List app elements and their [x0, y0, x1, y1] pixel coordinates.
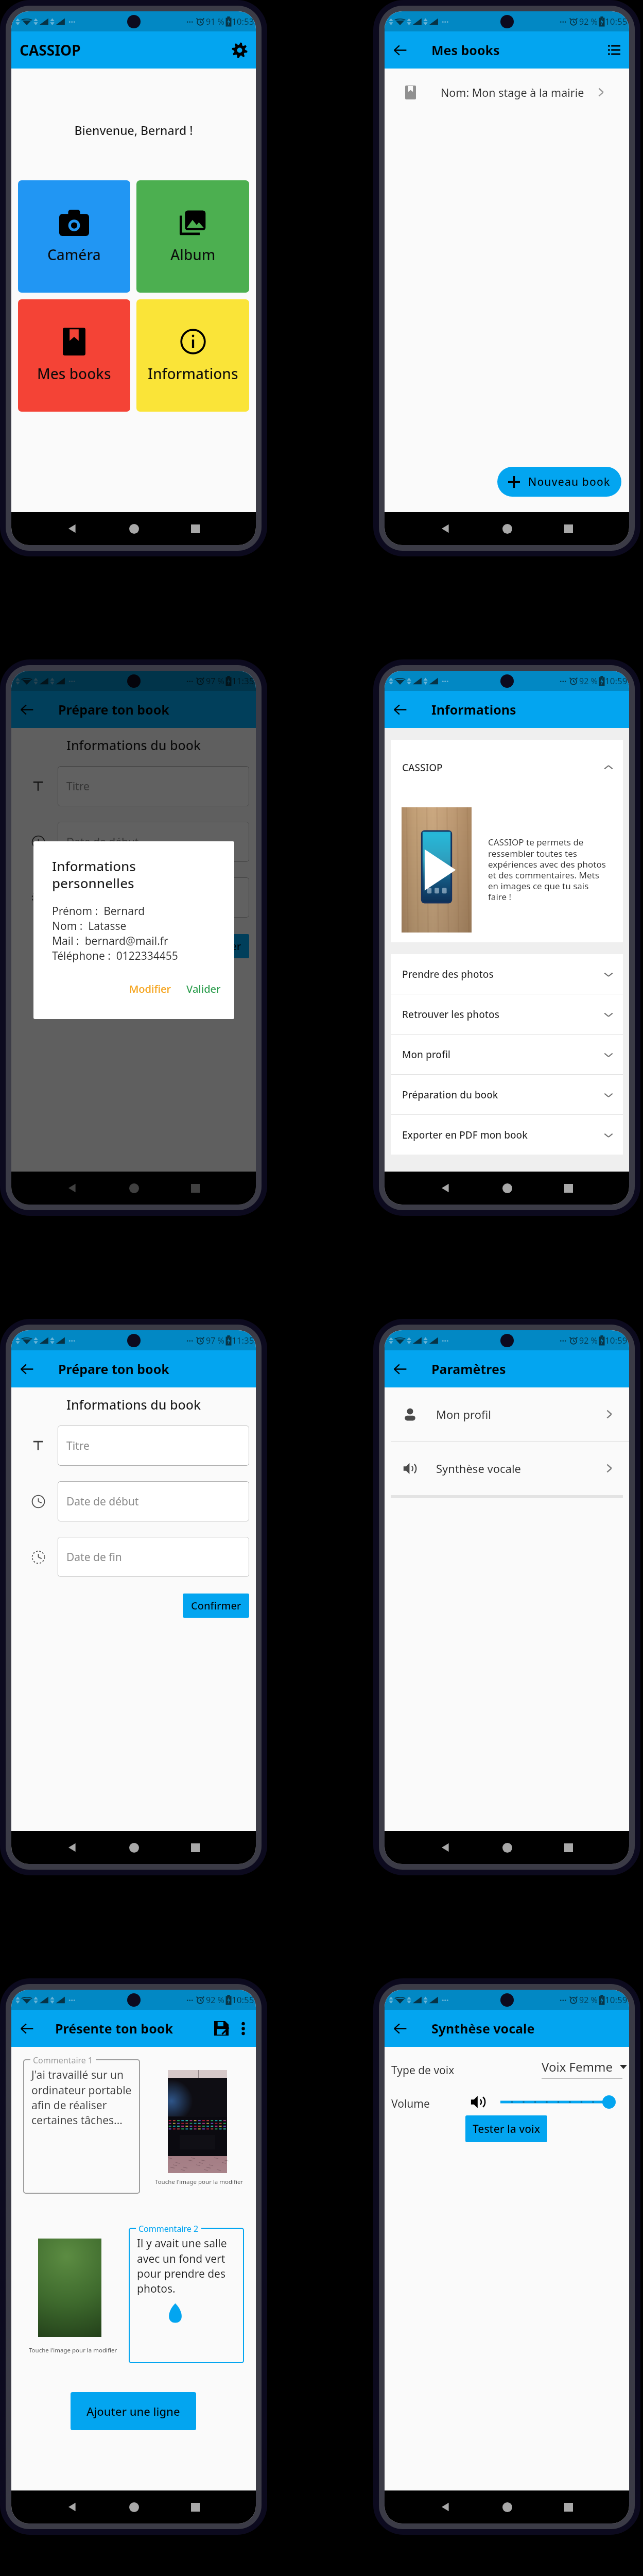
- staticText: Informations personnelles: [52, 857, 136, 892]
- staticText: Il y avait une salle avec un fond vert p…: [137, 2236, 227, 2296]
- button[interactable]: Recents: [183, 517, 207, 540]
- staticText: Informations: [148, 364, 238, 383]
- staticText: ···: [68, 16, 76, 27]
- button[interactable]: Recents: [557, 517, 580, 540]
- button[interactable]: Menu: [602, 38, 626, 62]
- button[interactable]: J'ai travaillé sur un ordinateur portabl…: [23, 2059, 140, 2194]
- button[interactable]: Back: [60, 517, 84, 540]
- staticText: 10:59: [605, 1994, 628, 2006]
- button[interactable]: Ajouter une ligne: [71, 2392, 196, 2430]
- button[interactable]: Back: [15, 698, 39, 721]
- button[interactable]: Il y avait une salle avec un fond vert p…: [129, 2228, 244, 2363]
- staticText: Mon profil: [436, 1406, 491, 1422]
- button[interactable]: Back: [433, 2495, 457, 2519]
- button[interactable]: Back: [388, 38, 412, 62]
- staticText: Prépare ton book: [58, 1360, 169, 1378]
- button[interactable]: Mon profil: [391, 1035, 623, 1074]
- button[interactable]: Exporter en PDF mon book: [391, 1115, 623, 1155]
- staticText: ···: [186, 16, 194, 27]
- staticText: CASSIOP: [20, 40, 81, 60]
- staticText: Synthèse vocale: [431, 2020, 535, 2037]
- staticText: Prendre des photos: [402, 968, 494, 981]
- button[interactable]: Back: [60, 1176, 84, 1200]
- button[interactable]: Titre: [58, 766, 249, 806]
- button[interactable]: Valider: [184, 980, 223, 998]
- staticText: Nouveau book: [528, 474, 611, 489]
- button[interactable]: Tester la voix: [465, 2115, 547, 2142]
- button[interactable]: Mes books: [18, 299, 130, 412]
- button[interactable]: Back: [60, 1836, 84, 1859]
- button[interactable]: More options: [233, 2019, 253, 2038]
- button[interactable]: Home: [122, 1176, 146, 1200]
- staticText: 97 %: [206, 675, 224, 687]
- staticText: ···: [186, 1335, 194, 1346]
- button[interactable]: Home: [495, 517, 519, 540]
- button[interactable]: Home: [495, 2495, 519, 2519]
- button[interactable]: Date de fin: [58, 1537, 249, 1577]
- button[interactable]: Recents: [557, 1836, 580, 1859]
- button[interactable]: Mon profil: [385, 1387, 629, 1441]
- button[interactable]: Recents: [183, 1176, 207, 1200]
- button[interactable]: Back: [15, 2016, 39, 2040]
- button[interactable]: Home: [122, 1836, 146, 1859]
- button[interactable]: Recents: [183, 1836, 207, 1859]
- staticText: Exporter en PDF mon book: [402, 1128, 528, 1142]
- button[interactable]: Back: [388, 698, 412, 721]
- button[interactable]: Home: [122, 2495, 146, 2519]
- staticText: 10:53: [232, 15, 254, 27]
- button[interactable]: Album: [136, 180, 249, 293]
- staticText: Voix Femme: [542, 2058, 613, 2075]
- button[interactable]: Home: [495, 1836, 519, 1859]
- staticText: ···: [186, 1994, 194, 2006]
- button[interactable]: Back: [433, 1836, 457, 1859]
- button[interactable]: Retrouver les photos: [391, 994, 623, 1034]
- button[interactable]: Settings: [227, 38, 252, 62]
- button[interactable]: Modifier: [127, 980, 173, 998]
- button[interactable]: Voix Femme: [542, 2058, 627, 2075]
- button[interactable]: Home: [122, 517, 146, 540]
- button[interactable]: Synthèse vocale: [385, 1442, 629, 1495]
- staticText: ···: [68, 675, 76, 687]
- button[interactable]: Confirmer: [183, 934, 249, 958]
- button[interactable]: Préparation du book: [391, 1075, 623, 1114]
- staticText: Commentaire 2: [138, 2223, 199, 2234]
- button[interactable]: Recents: [183, 2495, 207, 2519]
- staticText: CASSIOP: [402, 761, 443, 774]
- staticText: CASSIOP te permets de ressembler toutes …: [488, 836, 606, 903]
- button[interactable]: Back: [15, 1357, 39, 1381]
- staticText: J'ai travaillé sur un ordinateur portabl…: [31, 2067, 132, 2127]
- button[interactable]: Back: [388, 1357, 412, 1381]
- staticText: Bienvenue, Bernard !: [18, 122, 249, 138]
- button[interactable]: Date de début: [58, 1481, 249, 1521]
- staticText: ···: [442, 1335, 449, 1346]
- button[interactable]: Back: [60, 2495, 84, 2519]
- staticText: Tester la voix: [473, 2122, 541, 2137]
- button[interactable]: Save: [210, 2016, 233, 2040]
- button[interactable]: Nom: Mon stage à la mairie: [385, 78, 629, 107]
- button[interactable]: Recents: [557, 1176, 580, 1200]
- staticText: Mail : bernard@mail.fr: [52, 934, 168, 948]
- staticText: ···: [442, 1994, 449, 2006]
- button[interactable]: Date de fin: [58, 877, 249, 918]
- button[interactable]: Informations: [136, 299, 249, 412]
- staticText: 10:55: [232, 1994, 254, 2006]
- button[interactable]: Back: [388, 2016, 412, 2040]
- button[interactable]: Back: [433, 517, 457, 540]
- staticText: Touche l'image pour la modifier: [29, 2346, 117, 2354]
- button[interactable]: Date de début: [58, 822, 249, 862]
- button[interactable]: Recents: [557, 2495, 580, 2519]
- button[interactable]: Nouveau book: [497, 467, 621, 497]
- staticText: Ajouter une ligne: [86, 2403, 180, 2419]
- staticText: Informations du book: [11, 736, 256, 754]
- button[interactable]: CASSIOP: [391, 740, 623, 795]
- button[interactable]: Back: [433, 1176, 457, 1200]
- button[interactable]: Caméra: [18, 180, 130, 293]
- button[interactable]: Home: [495, 1176, 519, 1200]
- staticText: 10:59: [605, 675, 628, 687]
- button[interactable]: Titre: [58, 1426, 249, 1466]
- button[interactable]: [500, 2095, 616, 2109]
- button[interactable]: Confirmer: [183, 1594, 249, 1618]
- staticText: Modifier: [129, 982, 171, 996]
- button[interactable]: Prendre des photos: [391, 954, 623, 994]
